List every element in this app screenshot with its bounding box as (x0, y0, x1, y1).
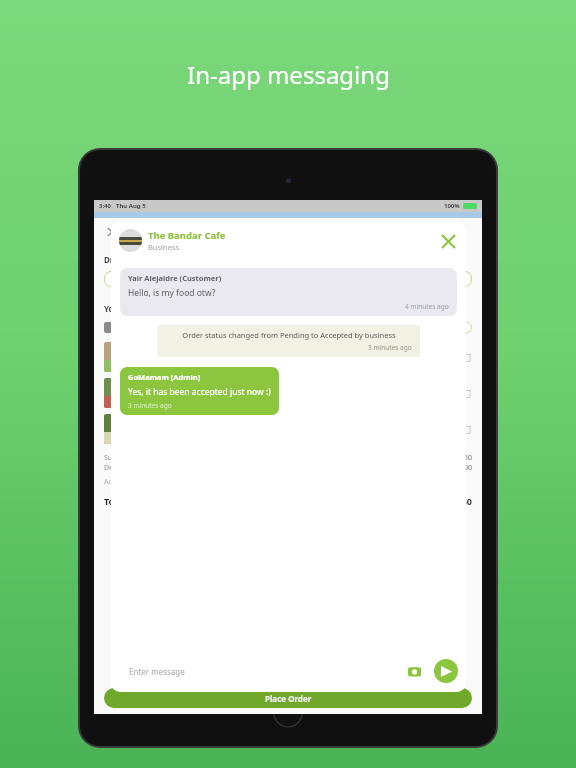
staticText: 0.50 (458, 453, 472, 463)
staticText: 4 minutes ago (405, 302, 449, 311)
staticText: 1.00 (458, 463, 472, 473)
staticText: Total (104, 495, 127, 507)
button[interactable]: Close (438, 231, 458, 251)
staticText: Thu Aug 5 (116, 202, 146, 210)
button[interactable]: Attach photo (406, 663, 422, 679)
staticText: GoMamam (Admin) (128, 372, 201, 382)
staticText: Hello, is my food otw? (128, 287, 216, 299)
button[interactable]: Place Order (104, 688, 472, 708)
staticText: Subtotal (104, 453, 132, 463)
staticText: Order status changed from Pending to Acc… (182, 330, 396, 340)
staticText: Yair Alejaldre (Customer) (128, 273, 222, 283)
staticText: In-app messaging (187, 58, 390, 91)
staticText: Add promo code (104, 477, 159, 487)
staticText: 3 minutes ago (128, 401, 172, 410)
staticText: The Bandar Cafe (148, 229, 226, 242)
staticText: 3 minutes ago (368, 343, 412, 352)
staticText: Delivery (104, 463, 131, 473)
staticText: Your order (104, 303, 147, 314)
staticText: Yes, it has been accepted just now :) (128, 386, 271, 398)
staticText: 7.50 (454, 495, 472, 507)
button[interactable]: Enter message (119, 658, 428, 684)
staticText: Enter message (129, 666, 185, 677)
staticText: 100% (444, 202, 460, 210)
staticText: Place Order (265, 693, 312, 704)
staticText: Business (148, 242, 180, 252)
staticText: Driver (104, 254, 129, 265)
staticText: 3:40 (99, 202, 111, 210)
button[interactable]: Send (434, 659, 458, 683)
